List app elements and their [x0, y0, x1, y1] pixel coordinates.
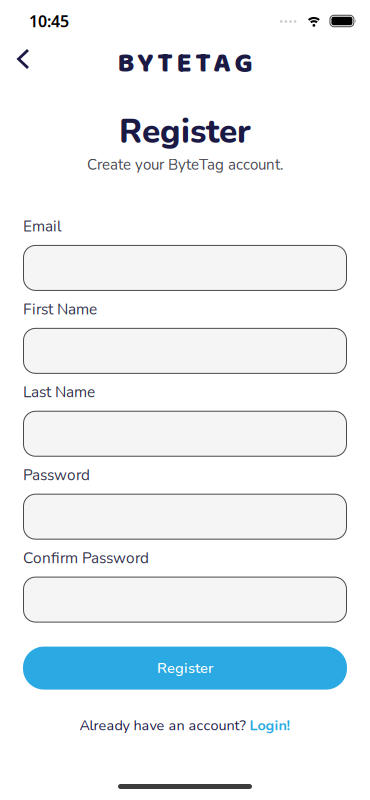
textField[interactable] — [23, 253, 347, 283]
textField[interactable] — [23, 419, 347, 449]
staticText: Login! — [249, 716, 290, 735]
staticText: Confirm Password — [23, 548, 149, 569]
staticText: Create your ByteTag account. — [87, 154, 283, 175]
staticText: Password — [23, 465, 90, 486]
textField[interactable] — [23, 584, 347, 615]
staticText: Already have an account? — [79, 716, 245, 735]
button[interactable]: Back — [0, 48, 30, 71]
staticText: First Name — [23, 299, 97, 320]
staticText: Last Name — [23, 382, 95, 403]
staticText: BYTETAG — [117, 42, 252, 86]
staticText: Email — [23, 216, 62, 237]
button[interactable]: Register — [23, 647, 347, 690]
staticText: Register — [157, 658, 213, 678]
button[interactable]: Login! — [249, 716, 290, 735]
textField[interactable] — [23, 336, 347, 366]
staticText: Register — [119, 109, 251, 154]
staticText: 10:45 — [29, 10, 69, 32]
textField[interactable] — [23, 502, 347, 532]
